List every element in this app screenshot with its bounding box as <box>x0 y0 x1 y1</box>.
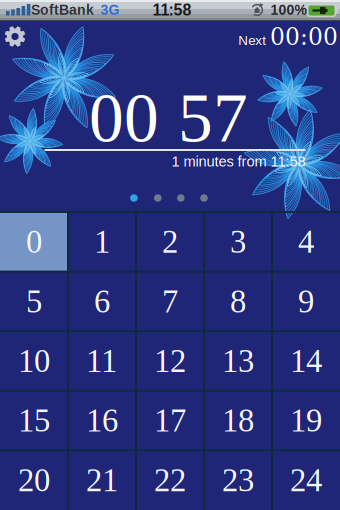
button[interactable]: 24 <box>272 450 340 510</box>
button[interactable]: 17 <box>136 391 204 450</box>
button[interactable]: 0 <box>0 212 68 272</box>
button[interactable]: 16 <box>68 391 136 450</box>
staticText: 6 <box>94 283 110 319</box>
button[interactable]: 10 <box>0 331 68 391</box>
staticText: Next <box>238 33 266 48</box>
staticText: 23 <box>222 462 254 498</box>
staticText: 12 <box>154 343 186 379</box>
button[interactable]: 20 <box>0 450 68 510</box>
button[interactable]: 21 <box>68 450 136 510</box>
button[interactable]: 12 <box>136 331 204 391</box>
staticText: 9 <box>298 283 314 319</box>
button[interactable]: 11 <box>68 331 136 391</box>
button[interactable]: 23 <box>204 450 272 510</box>
button[interactable]: 18 <box>204 391 272 450</box>
button[interactable]: 8 <box>204 272 272 331</box>
staticText: 21 <box>86 462 118 498</box>
button[interactable]: 9 <box>272 272 340 331</box>
staticText: 10 <box>18 343 50 379</box>
staticText: 00:00 <box>270 23 338 51</box>
button[interactable]: 1 <box>68 212 136 272</box>
staticText: 1 <box>94 224 110 260</box>
button[interactable]: 2 <box>136 212 204 272</box>
button[interactable]: 5 <box>0 272 68 331</box>
button[interactable]: 4 <box>272 212 340 272</box>
button[interactable]: 19 <box>272 391 340 450</box>
staticText: 2 <box>162 224 178 260</box>
staticText: 5 <box>26 283 42 319</box>
staticText: 18 <box>222 402 254 439</box>
staticText: 16 <box>86 402 118 439</box>
button[interactable]: 6 <box>68 272 136 331</box>
staticText: 00 <box>89 80 159 156</box>
button[interactable]: 3 <box>204 212 272 272</box>
button[interactable]: 14 <box>272 331 340 391</box>
button[interactable]: 15 <box>0 391 68 450</box>
staticText: 11 <box>86 343 118 379</box>
staticText: 1 minutes from 11:58 <box>172 153 306 170</box>
staticText: 100% <box>270 2 306 18</box>
button[interactable]: Settings <box>2 23 28 49</box>
staticText: 22 <box>154 462 186 498</box>
staticText: 15 <box>18 402 50 439</box>
staticText: 19 <box>290 402 322 439</box>
staticText: 24 <box>290 462 322 498</box>
button[interactable]: 22 <box>136 450 204 510</box>
staticText: 0 <box>26 224 42 260</box>
staticText: 14 <box>290 343 322 379</box>
staticText: 11:58 <box>152 1 191 19</box>
staticText: 3 <box>230 224 246 260</box>
staticText: 3G <box>100 2 119 18</box>
staticText: 57 <box>178 80 248 156</box>
staticText: 7 <box>162 283 178 319</box>
staticText: 8 <box>230 283 246 319</box>
staticText: 20 <box>18 462 50 498</box>
staticText: 17 <box>154 402 186 439</box>
button[interactable]: 7 <box>136 272 204 331</box>
button[interactable]: 13 <box>204 331 272 391</box>
staticText: 13 <box>222 343 254 379</box>
staticText: 4 <box>298 224 314 260</box>
staticText: SoftBank <box>31 2 94 18</box>
